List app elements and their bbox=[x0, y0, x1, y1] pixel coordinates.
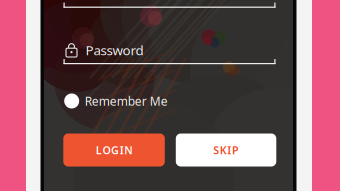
staticText: Password bbox=[85, 41, 143, 59]
staticText: Remember Me bbox=[85, 93, 168, 109]
staticText: SKIP bbox=[213, 143, 239, 157]
button[interactable]: SKIP bbox=[176, 133, 276, 166]
button[interactable]: Remember Me bbox=[64, 93, 168, 109]
staticText: LOGIN bbox=[96, 143, 132, 157]
button[interactable]: LOGIN bbox=[63, 133, 165, 166]
